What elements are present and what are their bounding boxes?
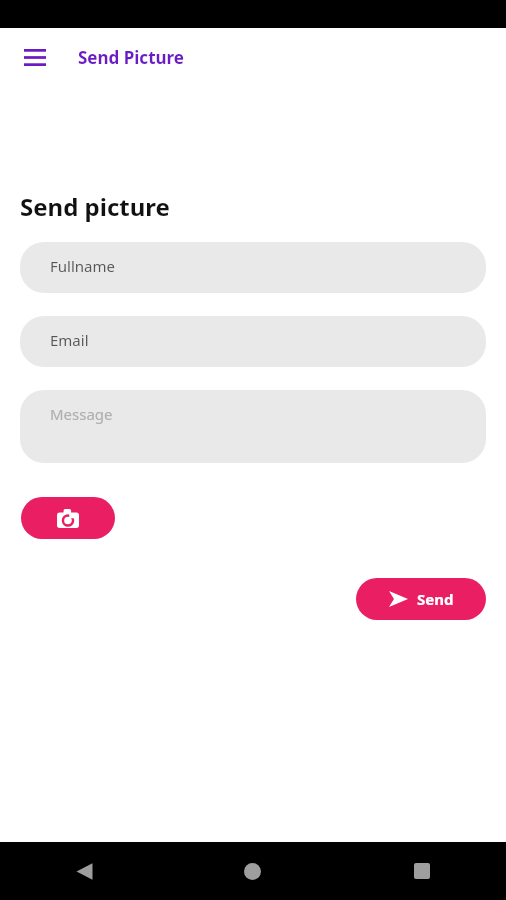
button[interactable]: Send [356,578,486,620]
button[interactable]: Home [168,842,337,900]
staticText: Fullname [50,256,115,276]
button[interactable]: Fullname [20,242,486,293]
button[interactable]: Back [0,842,168,900]
button[interactable]: Email [20,316,486,367]
staticText: Send Picture [78,46,184,69]
staticText: Send picture [20,190,170,223]
button[interactable]: Recent apps [337,842,506,900]
staticText: Message [50,404,113,424]
button[interactable]: Open navigation menu [14,36,56,78]
button[interactable]: Message [20,390,486,463]
staticText: Send [417,589,454,609]
button[interactable]: Take picture with camera [21,497,115,539]
staticText: Email [50,330,89,350]
